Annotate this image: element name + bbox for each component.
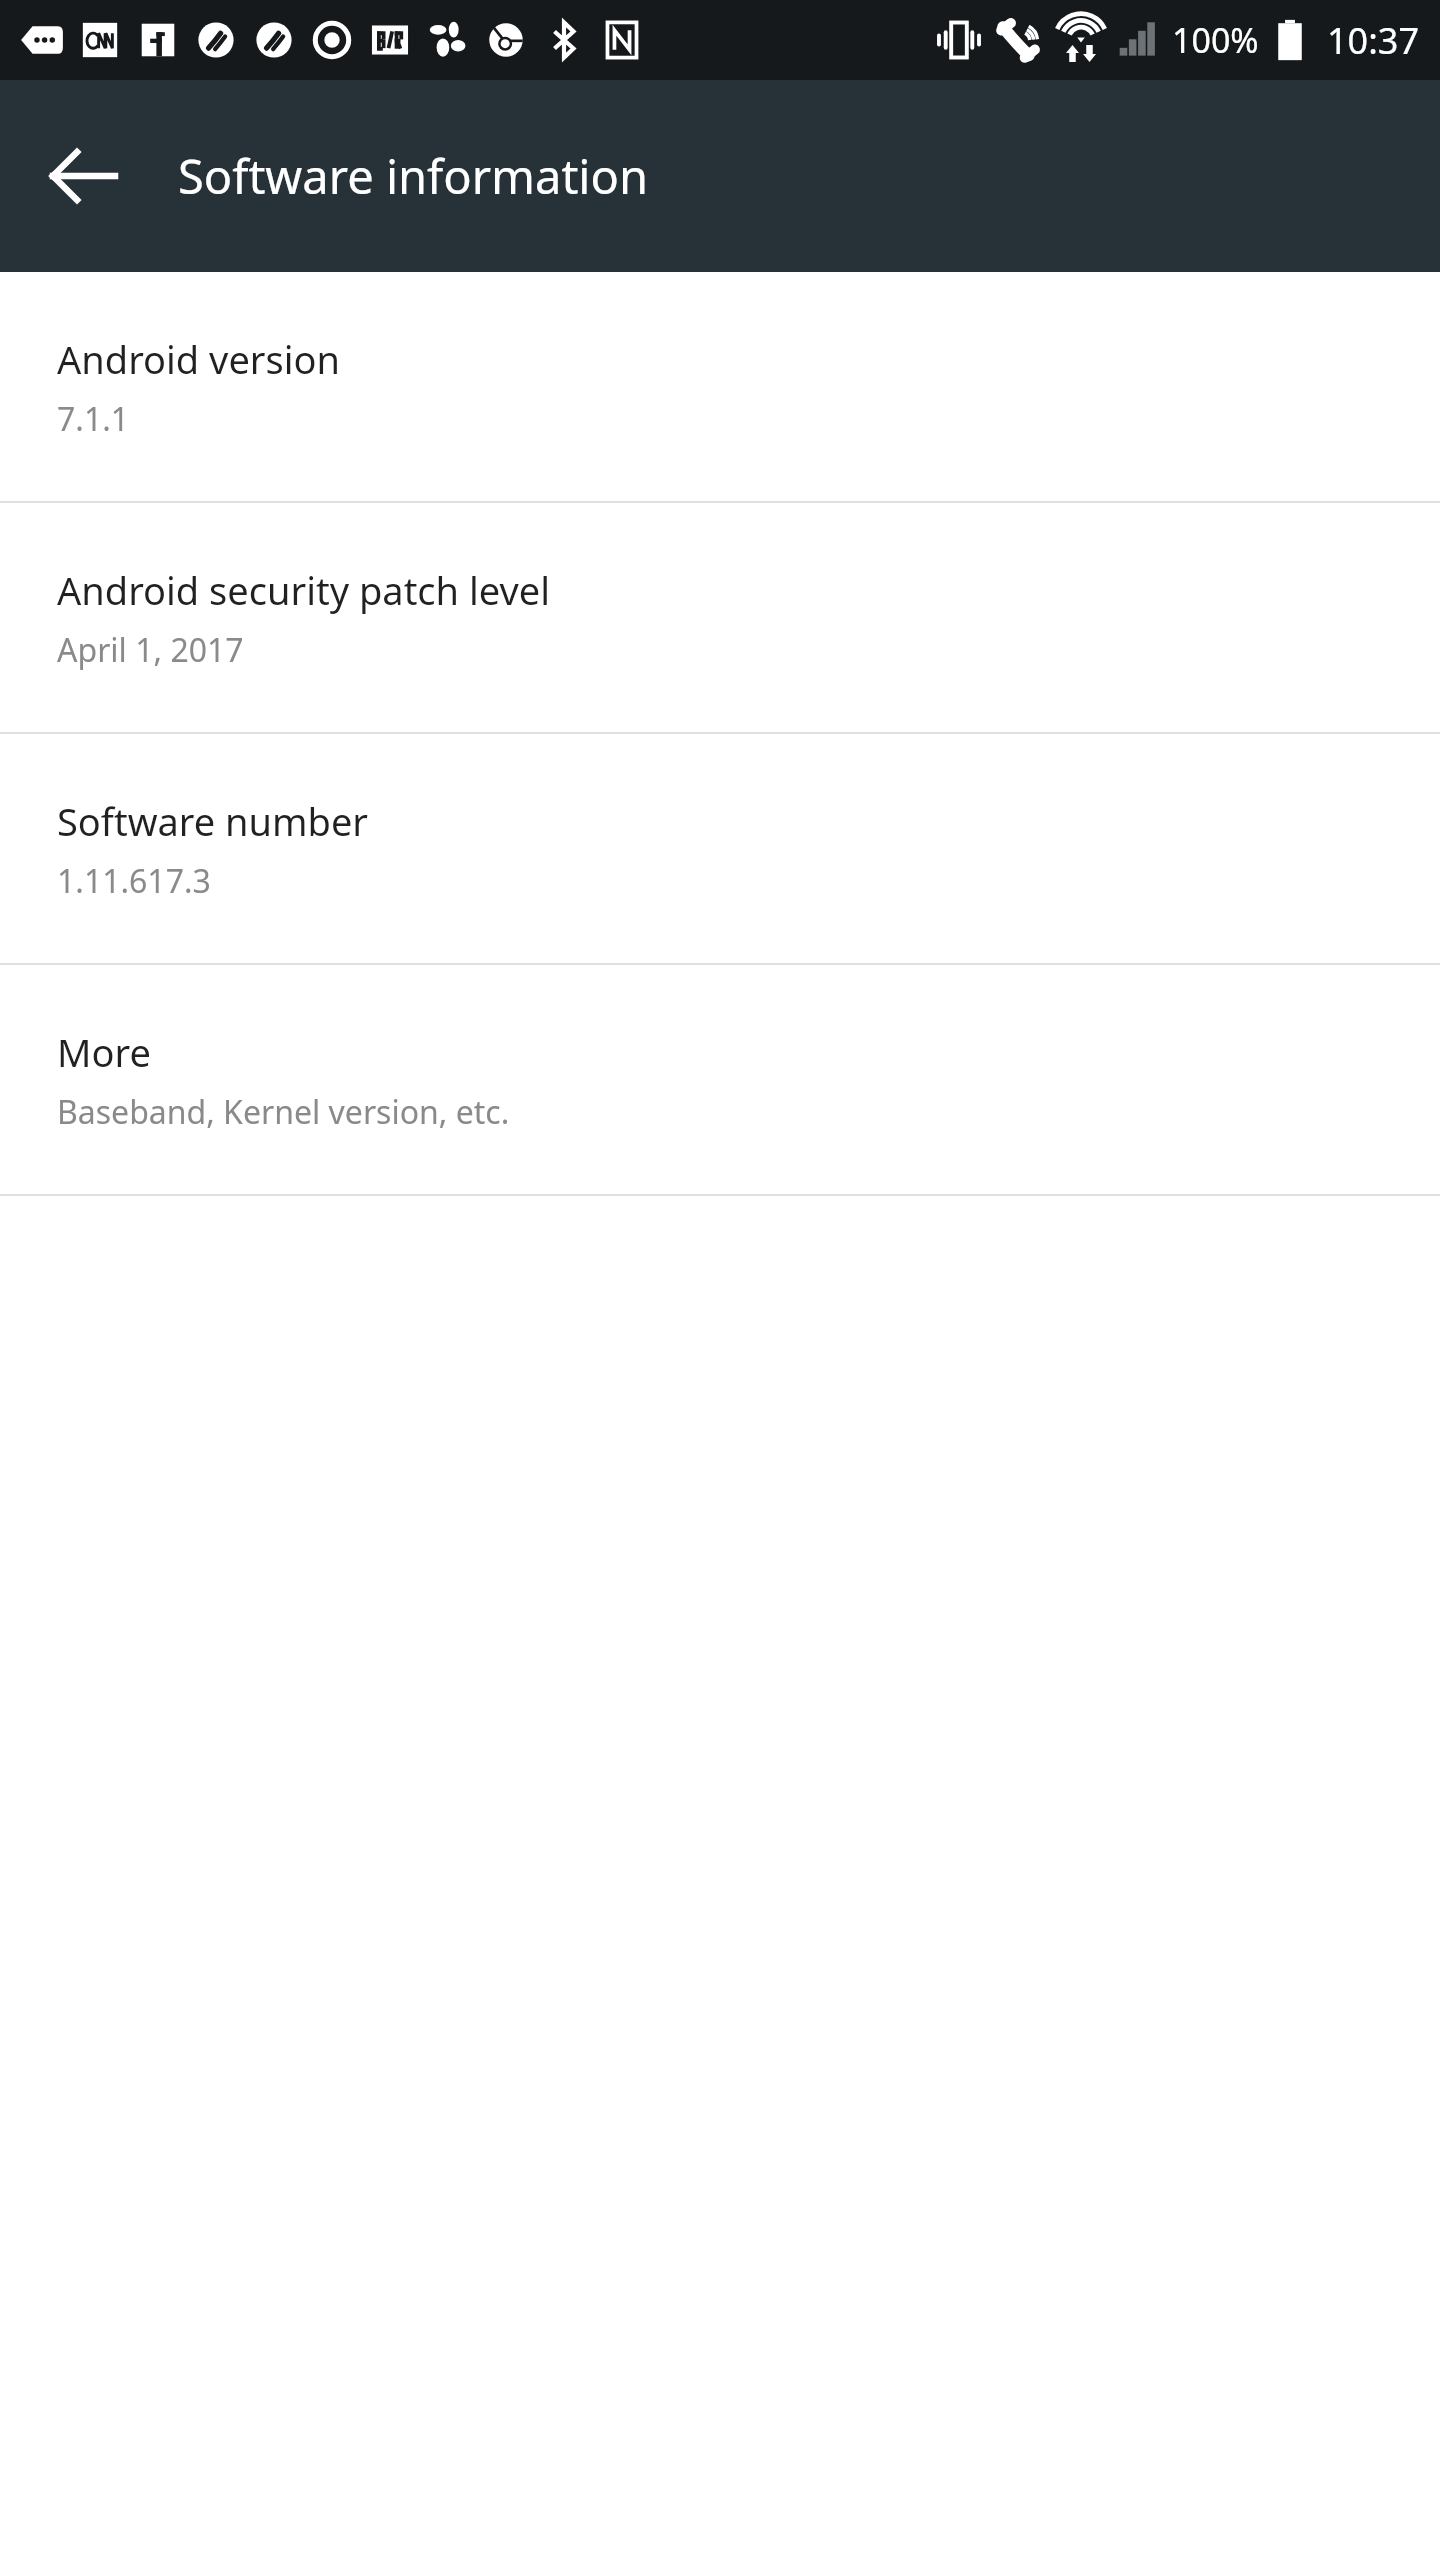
button[interactable]: Software number: [0, 734, 1440, 963]
staticText: Software number: [57, 795, 369, 847]
staticText: Android version: [57, 333, 341, 385]
staticText: More: [57, 1026, 151, 1078]
button[interactable]: More: [0, 965, 1440, 1194]
staticText: 7.1.1: [57, 397, 130, 441]
staticText: April 1, 2017: [57, 628, 244, 672]
staticText: Baseband, Kernel version, etc.: [57, 1090, 510, 1134]
staticText: 10:37: [1327, 16, 1420, 65]
staticText: Android security patch level: [57, 564, 550, 616]
button[interactable]: Android security patch level: [0, 503, 1440, 732]
button[interactable]: Android version: [0, 272, 1440, 501]
staticText: Software information: [178, 144, 648, 208]
staticText: 1.11.617.3: [57, 859, 211, 903]
button[interactable]: Back: [24, 116, 144, 236]
staticText: 100%: [1172, 17, 1259, 63]
